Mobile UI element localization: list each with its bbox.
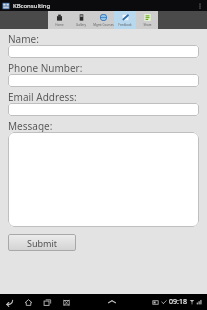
button[interactable] xyxy=(8,103,199,116)
button[interactable]: Share xyxy=(136,11,158,29)
button[interactable]: Submit xyxy=(8,234,76,251)
button[interactable]: Gallery xyxy=(70,11,92,29)
staticText: Mgmt Courses xyxy=(93,23,114,27)
staticText: Submit xyxy=(27,237,58,249)
button[interactable]: Home xyxy=(22,296,35,309)
staticText: Phone Number: xyxy=(8,61,83,74)
button[interactable]: Back xyxy=(3,296,16,309)
staticText: Email Address: xyxy=(8,90,77,103)
button[interactable] xyxy=(8,74,199,87)
staticText: KBconsulting xyxy=(13,2,51,10)
staticText: Message: xyxy=(8,119,53,132)
button[interactable]: Feedback xyxy=(114,11,136,29)
staticText: 09:18 xyxy=(169,297,187,307)
button[interactable] xyxy=(8,132,199,227)
button[interactable] xyxy=(8,45,199,58)
staticText: Feedback xyxy=(118,23,132,27)
staticText: Gallery xyxy=(76,23,86,27)
button[interactable]: Recent apps xyxy=(41,296,54,309)
button[interactable]: More options xyxy=(195,1,205,11)
button[interactable]: Screenshot xyxy=(60,296,73,309)
staticText: Home xyxy=(55,23,64,27)
staticText: Name: xyxy=(8,32,39,45)
staticText: Share xyxy=(143,23,152,27)
button[interactable]: Home xyxy=(48,11,70,29)
button[interactable]: Mgmt Courses xyxy=(92,11,114,29)
